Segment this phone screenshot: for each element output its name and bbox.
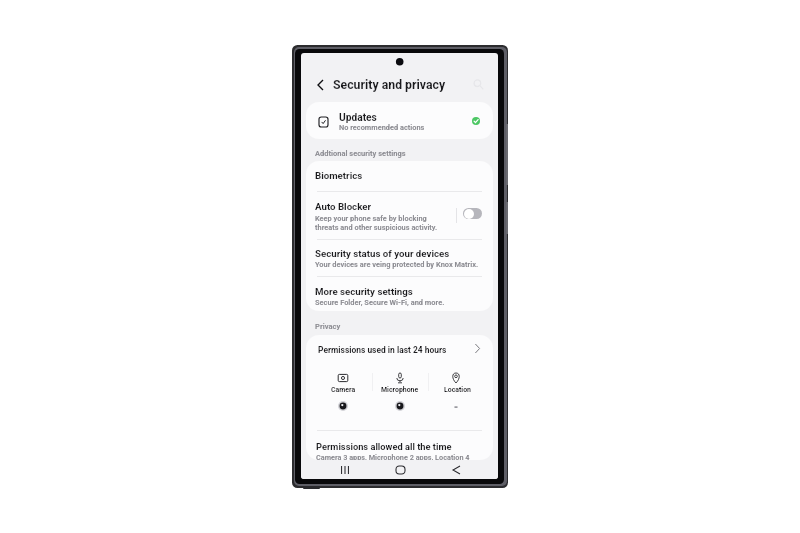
staticText: Security status of your devices (315, 248, 450, 259)
staticText: Location (444, 386, 471, 394)
staticText: No recommended actions (339, 123, 425, 132)
button[interactable]: Home (390, 461, 410, 478)
button[interactable]: Search (471, 77, 486, 92)
staticText: Your devices are veing protected by Knox… (315, 260, 479, 269)
button[interactable]: Auto Blocker toggle (463, 208, 482, 219)
staticText: Updates (339, 112, 377, 124)
button[interactable] (306, 335, 493, 363)
staticText: More security settings (315, 286, 413, 297)
button[interactable] (306, 276, 493, 310)
staticText: Camera 3 apps, Microphone 2 apps, Locati… (316, 453, 470, 462)
button[interactable] (306, 102, 493, 139)
staticText: Microphone (381, 386, 419, 394)
button[interactable] (387, 370, 413, 412)
staticText: Permissions used in last 24 hours (318, 345, 447, 355)
button[interactable] (306, 161, 493, 191)
staticText: Security and privacy (333, 78, 446, 92)
button[interactable] (306, 430, 493, 460)
staticText: Permissions allowed all the time (316, 441, 452, 452)
staticText: Camera (331, 386, 356, 394)
staticText: Keep your phone safe by blocking (315, 214, 427, 223)
staticText: threats and other suspicious activity. (315, 223, 438, 232)
button[interactable] (444, 370, 470, 412)
button[interactable]: Back (311, 72, 330, 98)
staticText: Biometrics (315, 170, 363, 181)
staticText: Privacy (315, 322, 341, 331)
button[interactable] (306, 239, 493, 276)
staticText: Secure Folder, Secure Wi-Fi, and more. (315, 298, 445, 307)
staticText: Auto Blocker (315, 201, 372, 212)
button[interactable] (330, 370, 356, 412)
button[interactable]: Back (446, 461, 466, 478)
staticText: Addtional security settings (315, 149, 406, 158)
button[interactable]: Recents (335, 461, 355, 478)
button[interactable] (306, 191, 493, 239)
